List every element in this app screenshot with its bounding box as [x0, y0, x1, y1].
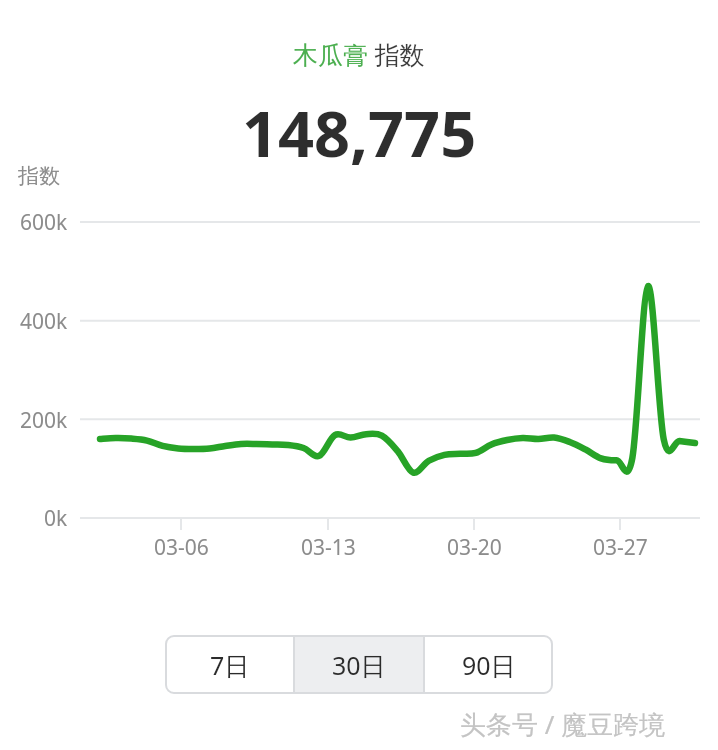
button[interactable]: 90日	[424, 635, 553, 694]
staticText: 03-27	[593, 533, 648, 562]
staticText: 03-13	[301, 533, 356, 562]
staticText: 头条号 / 魔豆跨境	[460, 706, 666, 742]
staticText: 7日	[210, 648, 250, 682]
staticText: 0k	[44, 504, 68, 532]
staticText: 03-06	[154, 533, 209, 562]
staticText: 木瓜膏 指数	[293, 37, 425, 71]
staticText: 90日	[462, 648, 516, 682]
staticText: 400k	[20, 307, 68, 335]
staticText: 200k	[20, 406, 68, 434]
staticText: 指数	[18, 163, 60, 189]
button[interactable]: 30日	[294, 635, 424, 694]
staticText: 03-20	[447, 533, 502, 562]
staticText: 30日	[332, 648, 386, 682]
staticText: 600k	[20, 208, 68, 236]
button[interactable]: 7日	[165, 635, 294, 694]
staticText: 148,775	[242, 90, 477, 176]
